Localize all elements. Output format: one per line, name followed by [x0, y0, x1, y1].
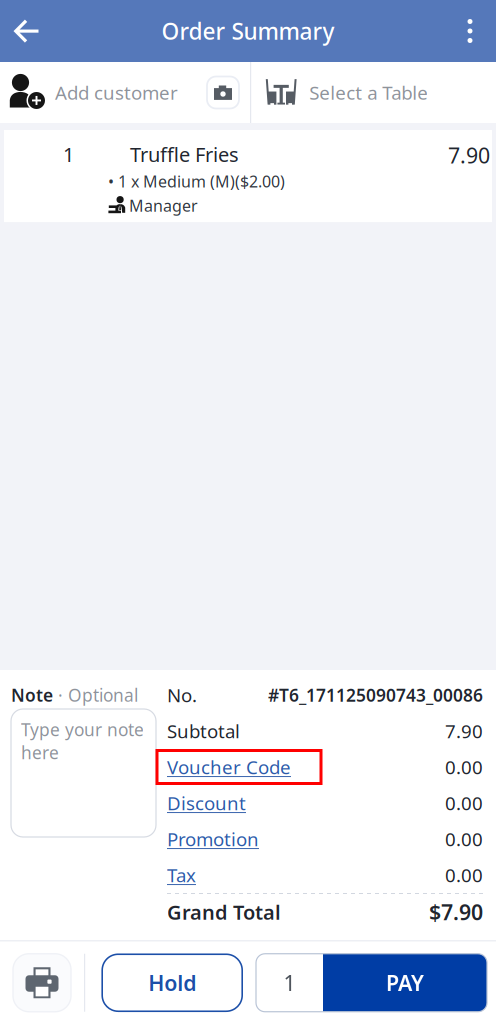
staticText: Promotion — [167, 827, 259, 851]
button[interactable]: Select a Table — [251, 62, 495, 123]
staticText: No. — [167, 683, 197, 707]
staticText: Select a Table — [309, 80, 428, 105]
button[interactable]: 1 — [4, 130, 492, 222]
staticText: 0.00 — [445, 863, 483, 887]
staticText: Add customer — [55, 80, 178, 105]
button[interactable]: Back — [0, 0, 52, 62]
staticText: Type your note here — [21, 718, 144, 764]
button[interactable]: Add customer — [0, 62, 196, 123]
staticText: Tax — [167, 863, 196, 887]
staticText: Manager — [129, 195, 198, 216]
staticText: 0.00 — [445, 827, 483, 851]
staticText: #T6_171125090743_00086 — [268, 683, 483, 706]
staticText: Voucher Code — [167, 755, 291, 779]
staticText: 0.00 — [445, 791, 483, 815]
staticText: 1 — [283, 969, 295, 997]
button[interactable]: Tax — [167, 863, 196, 887]
button[interactable]: Promotion — [167, 827, 259, 851]
staticText: Hold — [148, 969, 196, 997]
staticText: Discount — [167, 791, 246, 815]
button[interactable]: Print — [13, 954, 71, 1012]
staticText: • 1 x Medium (M)($2.00) — [108, 171, 285, 192]
staticText: 1 — [63, 141, 74, 168]
staticText: Note — [11, 683, 53, 706]
staticText: · Optional — [58, 683, 138, 706]
button[interactable]: Hold — [102, 954, 242, 1011]
staticText: $7.90 — [429, 898, 483, 926]
button[interactable]: More options — [444, 0, 496, 62]
staticText: 7.90 — [448, 141, 490, 169]
button[interactable]: Take photo — [196, 62, 250, 123]
staticText: Truffle Fries — [130, 141, 239, 168]
staticText: Order Summary — [161, 16, 334, 46]
button[interactable]: PAY — [323, 954, 487, 1012]
button[interactable]: 1 — [256, 954, 323, 1012]
staticText: Subtotal — [167, 719, 240, 743]
button[interactable]: Discount — [167, 791, 246, 815]
staticText: 0.00 — [445, 755, 483, 779]
button[interactable]: Type your note here — [11, 709, 156, 837]
staticText: PAY — [386, 969, 424, 997]
staticText: Grand Total — [167, 899, 281, 925]
button[interactable]: Voucher Code — [167, 755, 291, 779]
staticText: 7.90 — [445, 719, 483, 743]
